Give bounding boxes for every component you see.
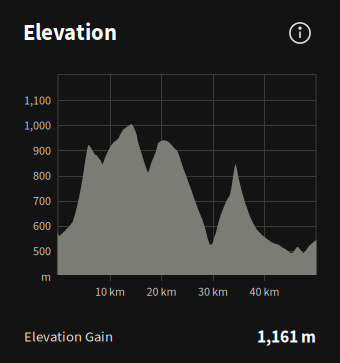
staticText: 500: [33, 243, 51, 260]
staticText: m: [41, 268, 51, 286]
staticText: 700: [33, 193, 51, 210]
staticText: 10 km: [95, 283, 125, 301]
button[interactable]: About elevation: [283, 16, 317, 50]
staticText: Elevation Gain: [24, 327, 113, 347]
staticText: Elevation: [23, 17, 117, 49]
staticText: 1,100: [24, 92, 51, 109]
staticText: 1,161 m: [257, 325, 316, 349]
staticText: 40 km: [249, 283, 279, 301]
staticText: 1,000: [24, 117, 51, 134]
staticText: 600: [33, 218, 51, 235]
staticText: 30 km: [198, 283, 228, 301]
staticText: 900: [33, 142, 51, 159]
staticText: 800: [33, 167, 51, 185]
staticText: 20 km: [146, 283, 176, 301]
